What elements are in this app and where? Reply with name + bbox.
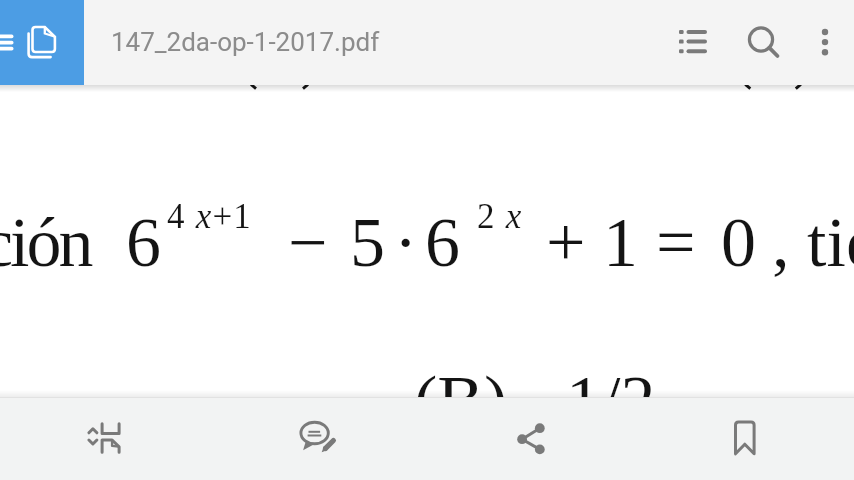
staticText: 1/2 <box>566 362 656 397</box>
staticText: tie <box>807 204 854 282</box>
staticText: + <box>546 204 586 282</box>
button[interactable] <box>801 0 849 85</box>
button[interactable] <box>213 398 426 480</box>
button[interactable] <box>0 0 84 85</box>
staticText: · <box>394 204 418 282</box>
staticText: 1 <box>603 204 638 282</box>
staticText: ción <box>0 204 91 282</box>
staticText: 4 x+1 <box>167 197 253 236</box>
button[interactable] <box>640 398 854 480</box>
staticText: = <box>656 204 696 282</box>
staticText: 6 <box>425 204 460 282</box>
staticText: − <box>288 204 328 282</box>
button[interactable] <box>426 398 640 480</box>
staticText: (B) <box>414 362 508 397</box>
staticText: 2 x <box>477 197 523 236</box>
staticText: 6 <box>126 204 161 282</box>
button[interactable] <box>0 398 213 480</box>
staticText: 5 <box>350 204 385 282</box>
staticText: 147_2da-op-1-2017.pdf <box>111 27 380 57</box>
button[interactable] <box>737 0 785 85</box>
staticText: , <box>772 204 790 282</box>
button[interactable] <box>669 0 717 85</box>
staticText: 0 <box>721 204 756 282</box>
